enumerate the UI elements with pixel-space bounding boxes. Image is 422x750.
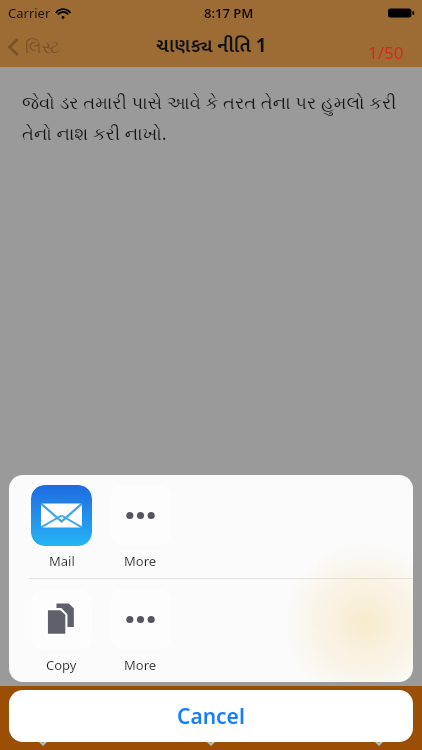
staticText: લિસ્ટ — [25, 39, 61, 56]
staticText: Copy — [46, 656, 77, 674]
staticText: 1/50 — [368, 41, 404, 64]
staticText: 8:17 PM — [204, 4, 254, 22]
button[interactable]: More — [110, 485, 189, 570]
button[interactable]: Toolbar action — [366, 730, 392, 750]
staticText: More — [124, 656, 157, 674]
button[interactable]: Mail — [31, 485, 110, 570]
staticText: Cancel — [177, 702, 245, 731]
button[interactable]: Toolbar action — [198, 730, 224, 750]
staticText: Mail — [49, 552, 75, 570]
button[interactable]: Cancel — [9, 690, 413, 742]
button[interactable]: લિસ્ટ — [0, 33, 71, 61]
staticText: ચાણક્ય નીતિ 1 — [156, 31, 267, 63]
button[interactable]: Toolbar action — [30, 730, 56, 750]
staticText: Carrier — [8, 4, 51, 22]
staticText: More — [124, 552, 157, 570]
staticText: જેવો ડર તમારી પાસે આવે કે તરત તેના પર હુ… — [22, 90, 406, 145]
button[interactable]: Copy — [31, 589, 110, 674]
button[interactable]: More — [110, 589, 189, 674]
